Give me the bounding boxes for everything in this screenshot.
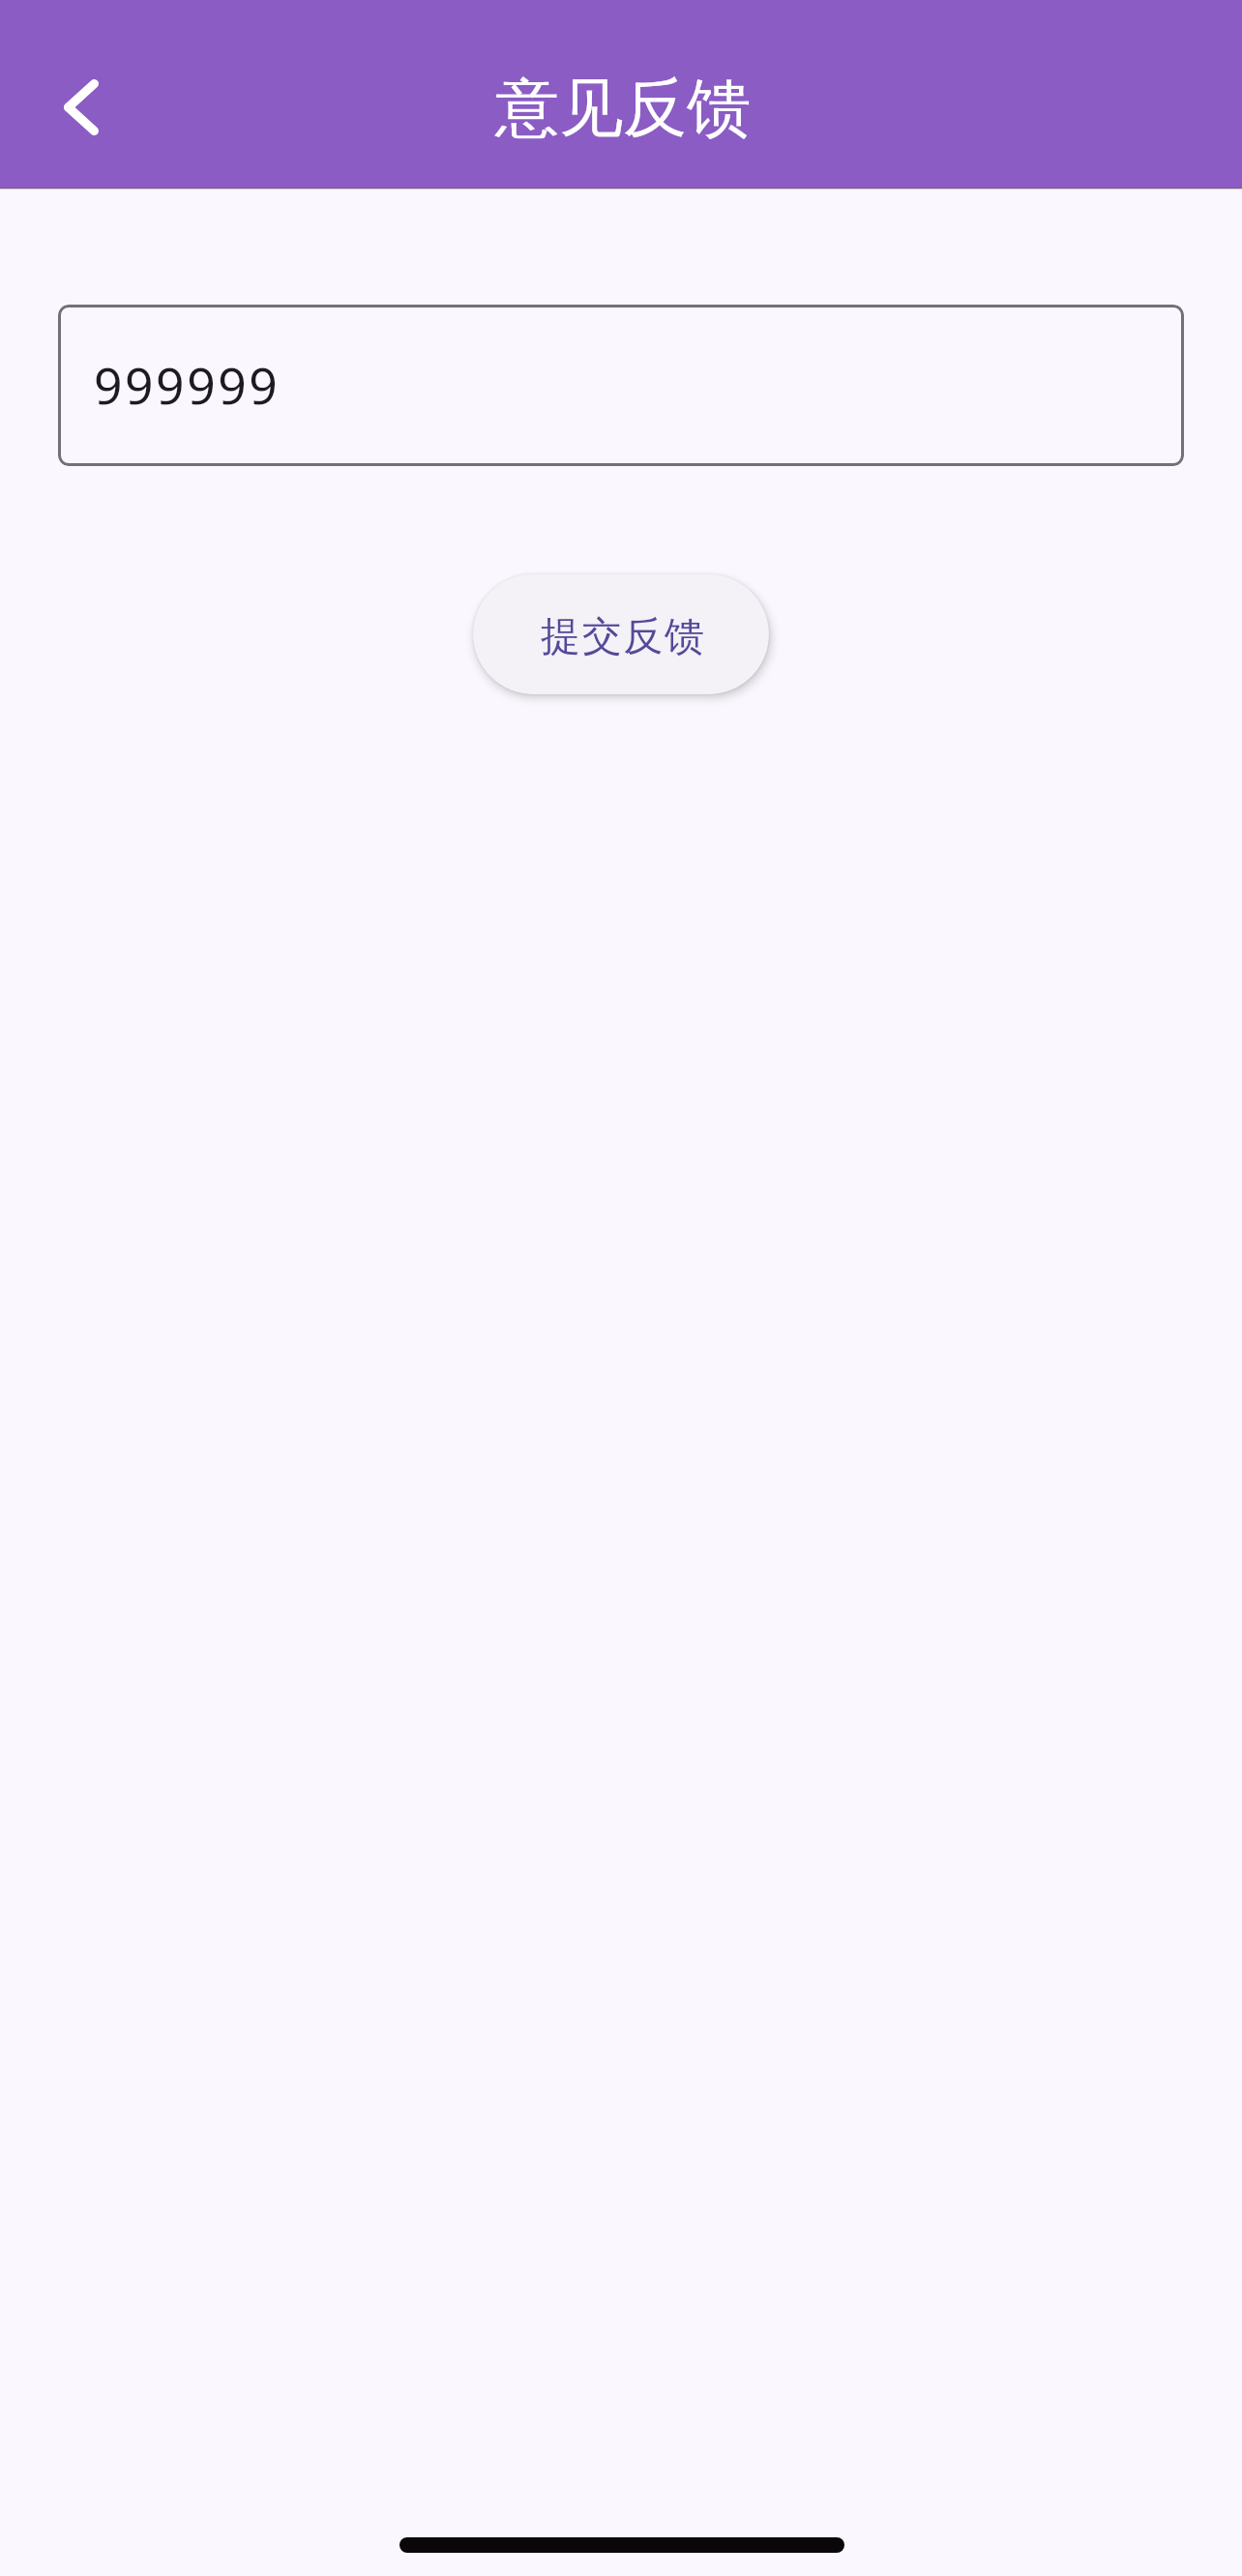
staticText: 提交反馈 [541, 612, 706, 662]
staticText: 999999 [94, 351, 281, 419]
button[interactable]: 999999 [58, 305, 1184, 466]
staticText: 意见反馈 [495, 68, 751, 148]
button[interactable]: 提交反馈 [473, 574, 769, 694]
button[interactable]: Back [35, 61, 128, 154]
